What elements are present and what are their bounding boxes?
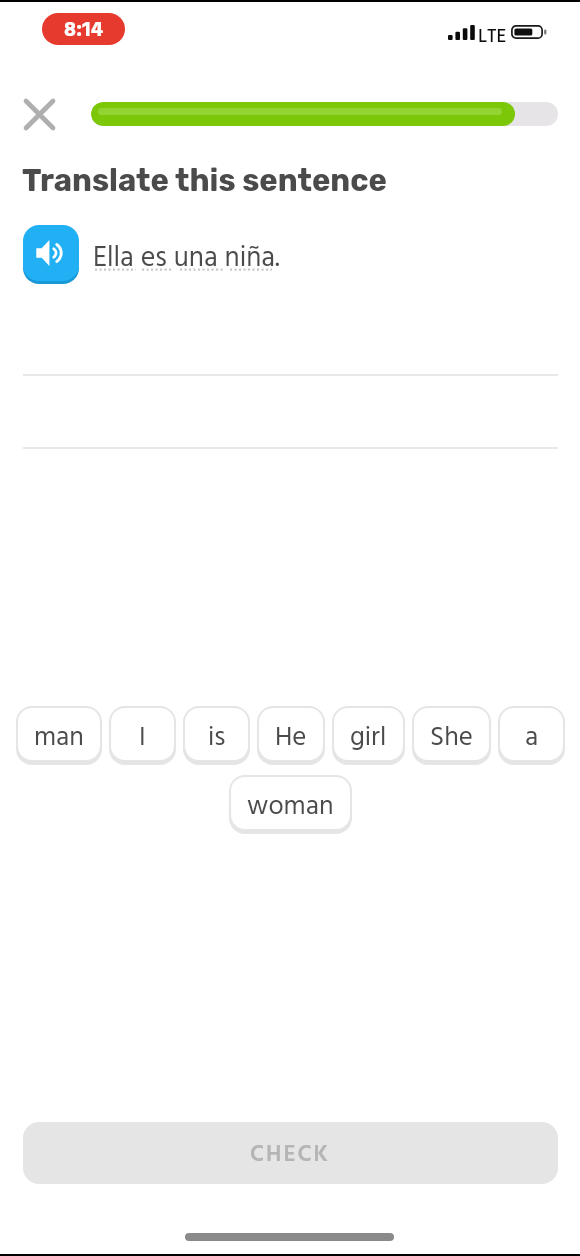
button[interactable]: woman [229, 775, 352, 834]
staticText: LTE [478, 22, 507, 52]
staticText: I [139, 717, 146, 760]
staticText: a [525, 717, 539, 760]
staticText: woman [247, 786, 334, 829]
button[interactable]: girl [332, 706, 405, 765]
staticText: Ella es una niña. [93, 236, 280, 281]
button[interactable]: She [412, 706, 491, 765]
staticText: CHECK [250, 1137, 331, 1174]
button[interactable]: is [183, 706, 250, 765]
staticText: 8:14 [64, 13, 104, 45]
staticText: is [208, 717, 226, 760]
staticText: man [34, 717, 84, 760]
button[interactable]: Close lesson [17, 92, 61, 136]
button[interactable]: Play audio [23, 225, 79, 281]
button[interactable]: man [16, 706, 102, 765]
button[interactable]: I [109, 706, 176, 765]
staticText: Translate this sentence [22, 162, 387, 199]
staticText: girl [350, 717, 387, 760]
staticText: He [275, 717, 307, 760]
button[interactable]: a [498, 706, 565, 765]
button[interactable]: He [257, 706, 325, 765]
staticText: She [430, 717, 473, 760]
button[interactable]: CHECK [23, 1122, 558, 1184]
